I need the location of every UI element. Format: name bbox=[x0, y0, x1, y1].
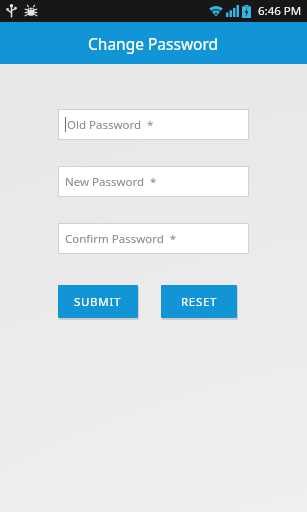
staticText: RESET bbox=[181, 294, 218, 310]
button[interactable]: Old Password * bbox=[58, 109, 249, 140]
button[interactable]: New Password * bbox=[58, 166, 249, 197]
staticText: New Password * bbox=[65, 174, 157, 190]
staticText: Old Password * bbox=[67, 117, 154, 133]
staticText: Change Password bbox=[88, 33, 219, 54]
staticText: Confirm Password * bbox=[65, 231, 177, 247]
button[interactable]: RESET bbox=[161, 285, 237, 318]
button[interactable]: SUBMIT bbox=[58, 285, 138, 318]
staticText: 6:46 PM bbox=[258, 3, 302, 19]
button[interactable]: Confirm Password * bbox=[58, 223, 249, 254]
staticText: SUBMIT bbox=[74, 294, 122, 310]
